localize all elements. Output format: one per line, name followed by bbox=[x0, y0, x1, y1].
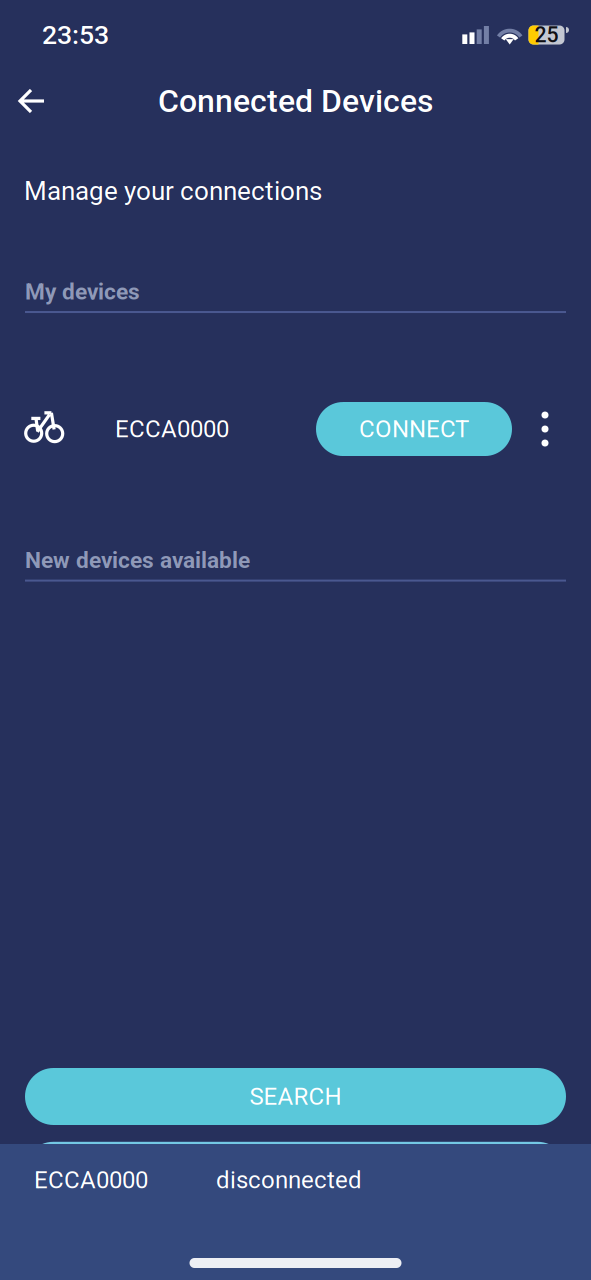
staticText: CONNECT bbox=[359, 415, 469, 443]
staticText: 23:53 bbox=[42, 19, 109, 51]
staticText: 25 bbox=[534, 22, 558, 47]
button[interactable]: SEARCH bbox=[25, 1068, 566, 1125]
staticText: disconnected bbox=[216, 1166, 362, 1194]
staticText: Manage your connections bbox=[24, 176, 322, 206]
staticText: My devices bbox=[25, 278, 140, 305]
staticText: ECCA0000 bbox=[115, 415, 229, 443]
staticText: ECCA0000 bbox=[34, 1166, 148, 1194]
button[interactable]: CONNECT bbox=[316, 402, 512, 456]
button[interactable]: Back bbox=[8, 77, 56, 125]
button[interactable]: Add device bbox=[25, 1143, 566, 1200]
staticText: SEARCH bbox=[249, 1082, 341, 1110]
staticText: Connected Devices bbox=[158, 82, 433, 120]
staticText: New devices available bbox=[25, 547, 250, 574]
button[interactable]: More options bbox=[525, 405, 565, 453]
